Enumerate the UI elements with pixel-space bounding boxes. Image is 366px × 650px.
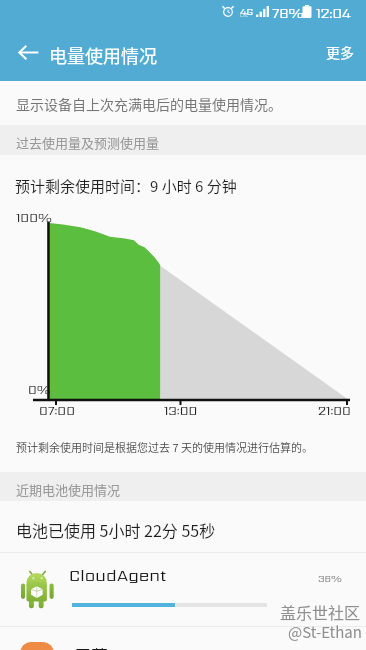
staticText: 21:00 xyxy=(318,401,351,419)
staticText: 预计剩余使用时间是根据您过去 7 天的使用情况进行估算的。 xyxy=(16,439,314,455)
staticText: 电量使用情况 xyxy=(49,42,157,68)
staticText: 07:00 xyxy=(39,401,75,419)
staticText: 4G xyxy=(240,4,254,18)
staticText: 电池已使用 5小时 22分 55秒 xyxy=(16,518,216,541)
staticText: LTE xyxy=(240,12,249,19)
staticText: @St-Ethan xyxy=(288,621,362,643)
button[interactable]: 屏幕 xyxy=(0,627,366,650)
staticText: 36% xyxy=(318,571,342,585)
staticText: CloudAgent xyxy=(69,563,167,587)
staticText: 过去使用量及预测使用量 xyxy=(16,133,160,152)
staticText: 更多 xyxy=(326,42,354,62)
staticText: 显示设备自上次充满电后的电量使用情况。 xyxy=(16,94,282,114)
staticText: 0% xyxy=(28,380,51,398)
staticText: 盖乐世社区 xyxy=(280,600,361,623)
staticText: 100% xyxy=(16,208,52,226)
staticText: 12:04 xyxy=(316,3,351,23)
button[interactable]: CloudAgent xyxy=(0,553,366,626)
staticText: 78% xyxy=(272,3,304,23)
staticText: 近期电池使用情况 xyxy=(16,480,121,499)
staticText: 屏幕 xyxy=(74,643,108,650)
staticText: 预计剩余使用时间：9 小时 6 分钟 xyxy=(15,175,237,197)
button[interactable]: Back xyxy=(4,28,52,76)
button[interactable]: 更多 xyxy=(316,32,364,72)
staticText: 13:00 xyxy=(164,401,198,419)
